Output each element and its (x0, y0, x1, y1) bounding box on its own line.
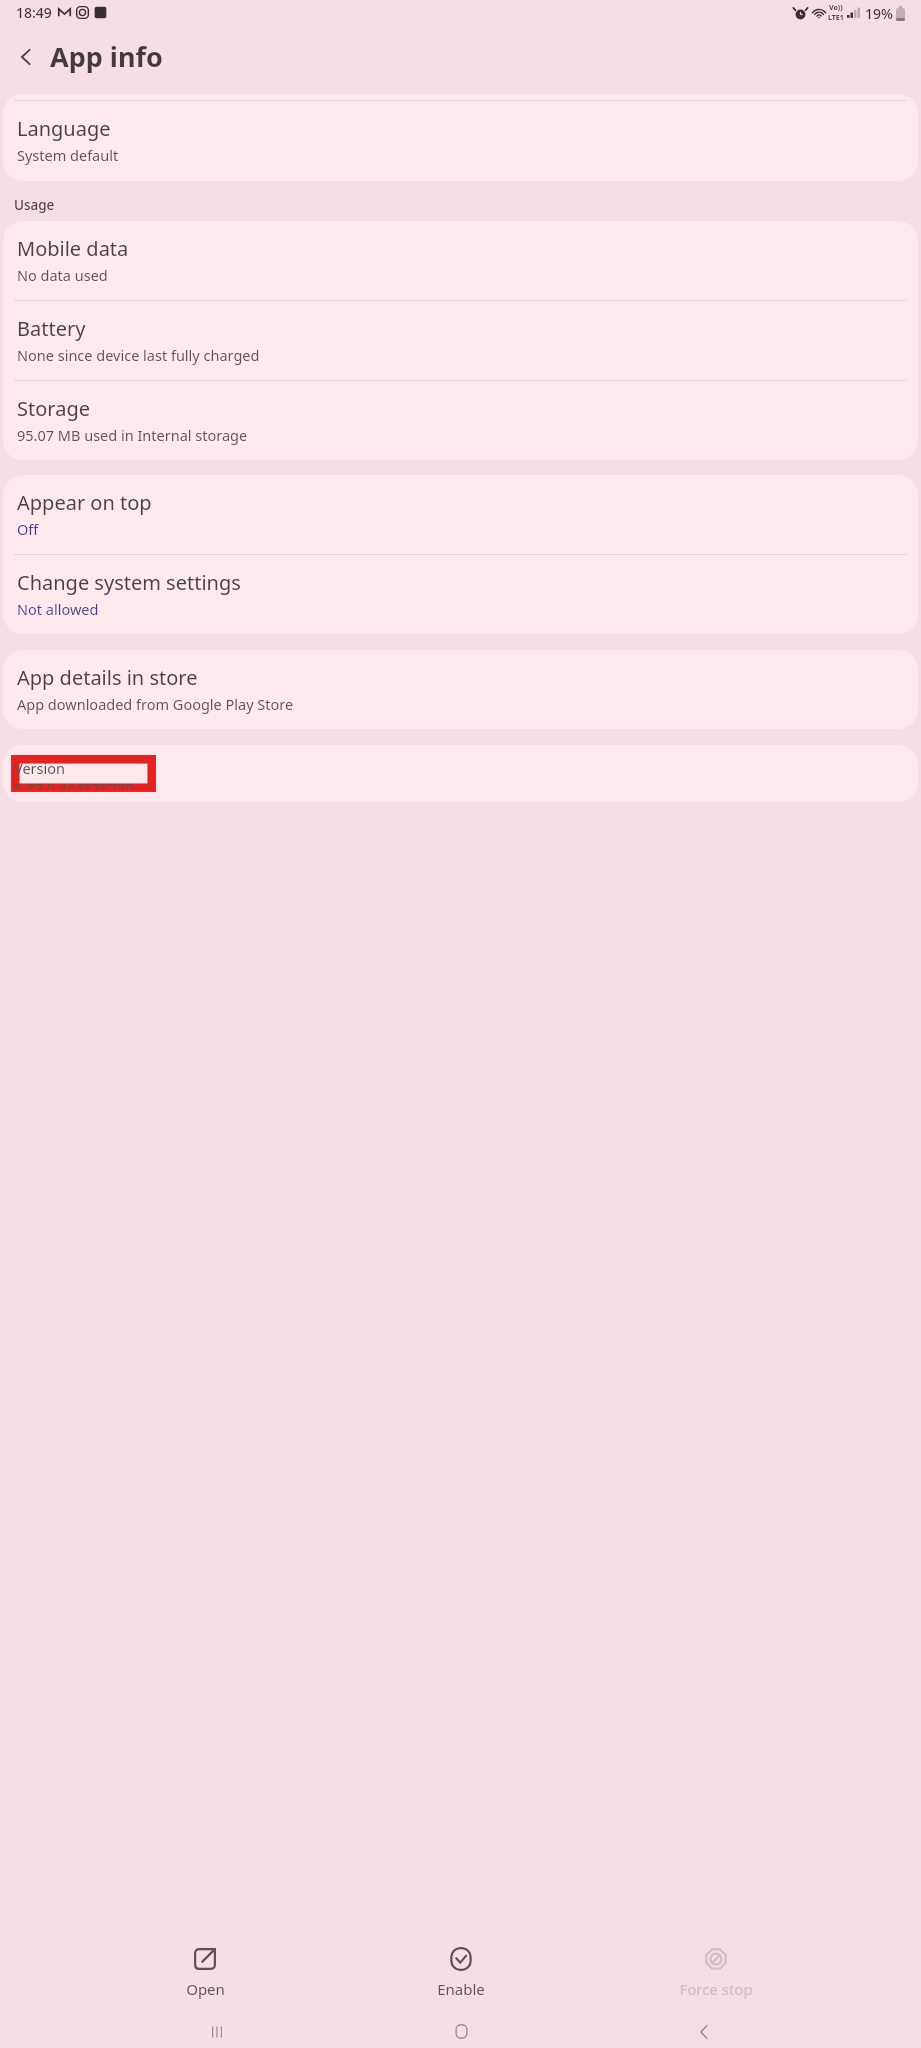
staticText: App downloaded from Google Play Store (17, 694, 294, 714)
staticText: Language (17, 115, 111, 142)
staticText: Force stop (679, 1979, 753, 1999)
staticText: App info (50, 38, 163, 75)
button[interactable]: App details in store (3, 650, 918, 729)
staticText: Battery (17, 315, 86, 342)
button[interactable]: Home (434, 2015, 488, 2048)
button[interactable]: Back (8, 39, 44, 75)
button[interactable]: Back (677, 2015, 731, 2048)
button[interactable]: Appear on top (3, 475, 918, 554)
button[interactable]: Enable (411, 1944, 511, 2001)
button[interactable]: Battery (3, 301, 918, 380)
staticText: System default (17, 145, 119, 165)
staticText: Mobile data (17, 235, 129, 262)
staticText: None since device last fully charged (17, 345, 260, 365)
button[interactable]: Change system settings (3, 555, 918, 634)
button[interactable]: Recents (190, 2015, 244, 2048)
staticText: Usage (14, 196, 55, 214)
button[interactable]: Force stop (666, 1944, 766, 2001)
button[interactable]: Storage (3, 381, 918, 460)
staticText: 95.07 MB used in Internal storage (17, 425, 248, 445)
staticText: App details in store (17, 664, 198, 691)
button[interactable]: Mobile data (3, 221, 918, 300)
staticText: Off (17, 519, 39, 539)
staticText: Storage (17, 395, 90, 422)
staticText: 19% (865, 4, 893, 23)
staticText: No data used (17, 265, 108, 285)
staticText: Open (186, 1979, 225, 1999)
staticText: 18:49 (16, 3, 52, 22)
staticText: Change system settings (17, 569, 241, 596)
staticText: Vo)) (829, 3, 843, 13)
staticText: Not allowed (17, 599, 99, 619)
button[interactable]: Open (155, 1944, 255, 2001)
staticText: Appear on top (17, 489, 152, 516)
button[interactable]: Language (3, 101, 918, 181)
staticText: Version 5.87.0.444878730 (14, 758, 153, 789)
staticText: Enable (437, 1979, 485, 1999)
staticText: LTE1 (828, 13, 844, 23)
button[interactable]: Version 5.87.0.444878730 (3, 745, 918, 802)
